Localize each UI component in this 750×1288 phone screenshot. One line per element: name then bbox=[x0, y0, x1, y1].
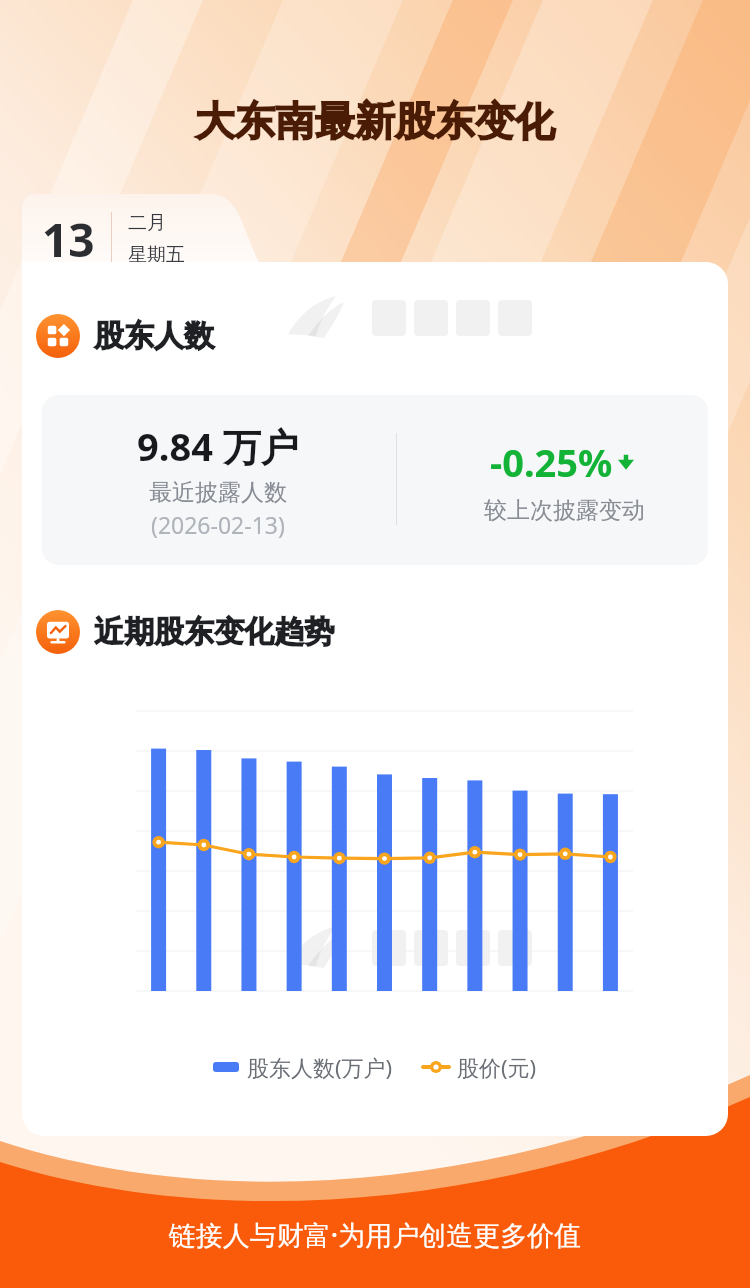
staticText: 二月 bbox=[128, 211, 166, 235]
other: 近期股东变化趋势 bbox=[36, 610, 80, 654]
button[interactable]: 近期股东变化趋势 bbox=[36, 610, 334, 654]
staticText: 星期五 bbox=[128, 243, 185, 267]
staticText: 13 bbox=[42, 208, 95, 271]
staticText: 近期股东变化趋势 bbox=[94, 613, 334, 651]
staticText: 链接人与财富·为用户创造更多价值 bbox=[0, 1216, 750, 1253]
staticText: 股东人数(万户) bbox=[247, 1052, 393, 1082]
staticText: 最近披露人数 bbox=[149, 478, 287, 507]
button[interactable]: 9.84 万户 bbox=[42, 395, 708, 565]
other: 股东人数 bbox=[36, 314, 80, 358]
staticText: 9.84 万户 bbox=[137, 420, 299, 472]
staticText: (2026-02-13) bbox=[151, 509, 285, 540]
staticText: 大东南最新股东变化 bbox=[0, 96, 750, 146]
staticText: 较上次披露变动 bbox=[484, 496, 645, 525]
staticText: -0.25% bbox=[490, 436, 613, 488]
staticText: 股东人数 bbox=[94, 317, 214, 355]
staticText: 股价(元) bbox=[457, 1052, 537, 1082]
button[interactable]: 股东人数 bbox=[36, 314, 214, 358]
